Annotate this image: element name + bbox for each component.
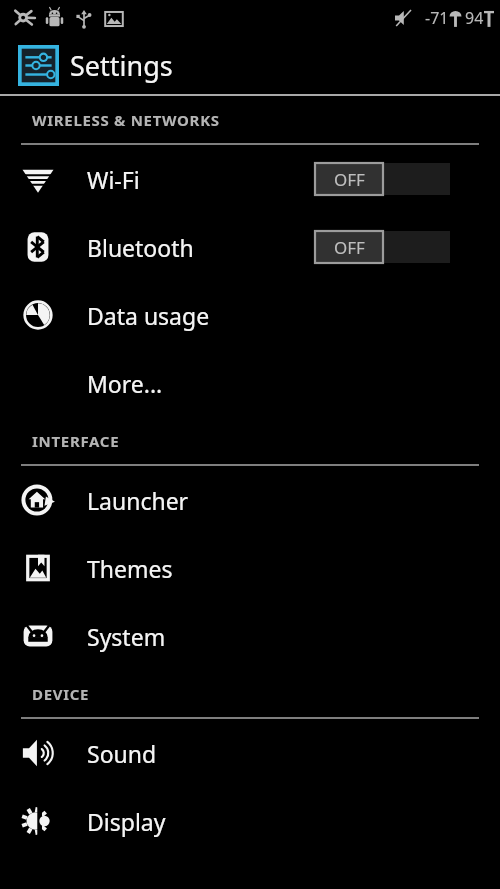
staticText: OFF bbox=[334, 168, 365, 191]
button[interactable]: System bbox=[0, 602, 500, 670]
button[interactable]: Wi-Fi bbox=[0, 145, 500, 213]
button[interactable]: Themes bbox=[0, 534, 500, 602]
staticText: -71 bbox=[425, 7, 449, 29]
button[interactable]: Settings bbox=[0, 36, 500, 94]
staticText: Bluetooth bbox=[87, 232, 194, 263]
staticText: More... bbox=[87, 368, 163, 399]
button[interactable]: Bluetooth bbox=[0, 213, 500, 281]
staticText: Settings bbox=[70, 47, 173, 84]
staticText: DEVICE bbox=[32, 684, 90, 704]
staticText: Wi-Fi bbox=[87, 164, 140, 195]
staticText: Themes bbox=[87, 553, 173, 584]
staticText: WIRELESS & NETWORKS bbox=[32, 110, 220, 130]
button[interactable]: Off bbox=[315, 231, 450, 263]
staticText: Data usage bbox=[87, 300, 210, 331]
staticText: 94 bbox=[465, 7, 484, 29]
button[interactable]: Sound bbox=[0, 719, 500, 787]
button[interactable]: Data usage bbox=[0, 281, 500, 349]
staticText: Launcher bbox=[87, 485, 189, 516]
staticText: System bbox=[87, 621, 166, 652]
staticText: Sound bbox=[87, 738, 157, 769]
staticText: INTERFACE bbox=[32, 431, 120, 451]
staticText: OFF bbox=[334, 236, 365, 259]
button[interactable]: Launcher bbox=[0, 466, 500, 534]
button[interactable]: Display bbox=[0, 787, 500, 855]
button[interactable]: More... bbox=[0, 349, 500, 417]
staticText: Display bbox=[87, 806, 166, 837]
button[interactable]: Off bbox=[315, 163, 450, 195]
